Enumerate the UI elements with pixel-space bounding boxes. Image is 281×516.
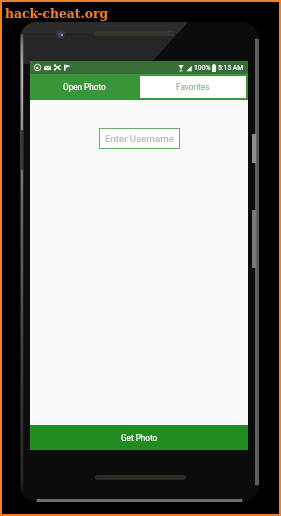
staticText: 100% [194,64,211,72]
staticText: Enter Username [105,133,174,144]
staticText: hack-cheat.org [5,6,108,20]
button[interactable]: Favorites [140,76,246,98]
button[interactable]: Open Photo [30,74,139,100]
staticText: Open Photo [63,82,106,92]
staticText: 5:15 AM [218,64,244,72]
staticText: Favorites [176,82,210,92]
button[interactable]: Get Photo [30,425,248,450]
button[interactable]: Enter Username [99,128,180,149]
staticText: Get Photo [121,433,158,443]
